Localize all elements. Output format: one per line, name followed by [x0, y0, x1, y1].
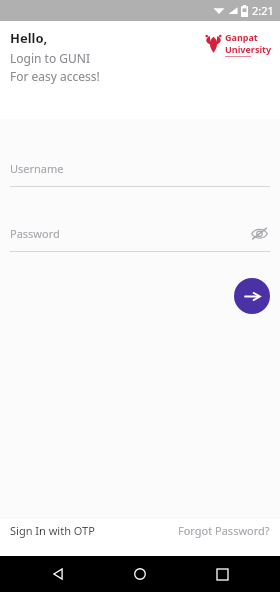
button[interactable]: Show password — [248, 222, 270, 244]
staticText: Ganpat — [225, 31, 258, 43]
staticText: Username — [10, 161, 64, 176]
staticText: Password — [10, 226, 60, 241]
staticText: For easy access! — [10, 68, 100, 84]
staticText: Forgot Password? — [178, 523, 270, 538]
staticText: University — [225, 43, 272, 55]
button[interactable]: Back — [44, 560, 72, 588]
staticText: Login to GUNI — [10, 50, 90, 66]
button[interactable]: Home — [126, 560, 154, 588]
staticText: Sign In with OTP — [10, 523, 95, 538]
button[interactable]: Forgot Password? — [178, 519, 270, 542]
button[interactable]: Username — [10, 156, 270, 187]
button[interactable]: Password — [10, 221, 270, 252]
staticText: 2:21 — [252, 3, 274, 18]
staticText: Hello, — [10, 29, 48, 47]
button[interactable]: Sign In with OTP — [10, 519, 95, 542]
button[interactable]: Recents — [208, 560, 236, 588]
button[interactable]: Sign in — [234, 278, 270, 314]
